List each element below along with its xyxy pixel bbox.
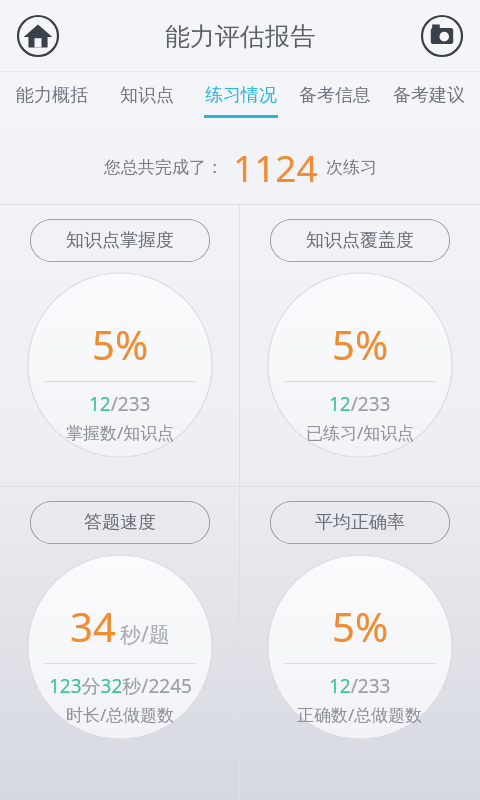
button[interactable]: Home xyxy=(16,14,60,58)
staticText: 5% xyxy=(332,599,389,653)
button[interactable]: 能力概括 xyxy=(4,72,99,130)
staticText: 备考信息 xyxy=(299,84,371,107)
button[interactable]: 知识点掌握度 xyxy=(0,205,239,486)
button[interactable]: 答题速度 xyxy=(30,501,210,544)
button[interactable]: 知识点掌握度 xyxy=(30,219,210,262)
button[interactable]: 知识点 xyxy=(99,72,194,130)
staticText: 12/233 xyxy=(329,673,391,699)
button[interactable]: 平均正确率 xyxy=(270,501,450,544)
staticText: 平均正确率 xyxy=(315,511,405,534)
button[interactable]: 备考建议 xyxy=(382,72,476,130)
staticText: 秒/题 xyxy=(120,620,170,649)
staticText: 能力评估报告 xyxy=(165,21,315,52)
button[interactable]: 备考信息 xyxy=(288,72,382,130)
staticText: 5% xyxy=(332,317,389,371)
staticText: 答题速度 xyxy=(84,511,156,534)
staticText: 知识点 xyxy=(120,84,174,107)
button[interactable]: 知识点覆盖度 xyxy=(240,205,480,486)
staticText: 掌握数/知识点 xyxy=(66,421,175,444)
staticText: 能力概括 xyxy=(16,84,88,107)
staticText: 12/233 xyxy=(329,391,391,417)
staticText: 练习情况 xyxy=(205,84,277,107)
staticText: 5% xyxy=(92,317,149,371)
staticText: 次练习 xyxy=(326,157,377,178)
staticText: 知识点覆盖度 xyxy=(306,229,414,252)
staticText: 备考建议 xyxy=(393,84,465,107)
staticText: 12/233 xyxy=(89,391,151,417)
staticText: 您总共完成了： xyxy=(104,157,223,178)
button[interactable]: Camera xyxy=(420,14,464,58)
staticText: 已练习/知识点 xyxy=(306,421,415,444)
staticText: 123分32秒/2245 xyxy=(49,673,192,699)
staticText: 34 xyxy=(70,599,116,653)
button[interactable]: 平均正确率 xyxy=(240,487,480,800)
button[interactable]: 答题速度 xyxy=(0,487,239,800)
staticText: 知识点掌握度 xyxy=(66,229,174,252)
staticText: 正确数/总做题数 xyxy=(297,703,423,726)
button[interactable]: 练习情况 xyxy=(194,72,288,130)
staticText: 1124 xyxy=(233,142,318,192)
staticText: 时长/总做题数 xyxy=(66,703,175,726)
button[interactable]: 知识点覆盖度 xyxy=(270,219,450,262)
